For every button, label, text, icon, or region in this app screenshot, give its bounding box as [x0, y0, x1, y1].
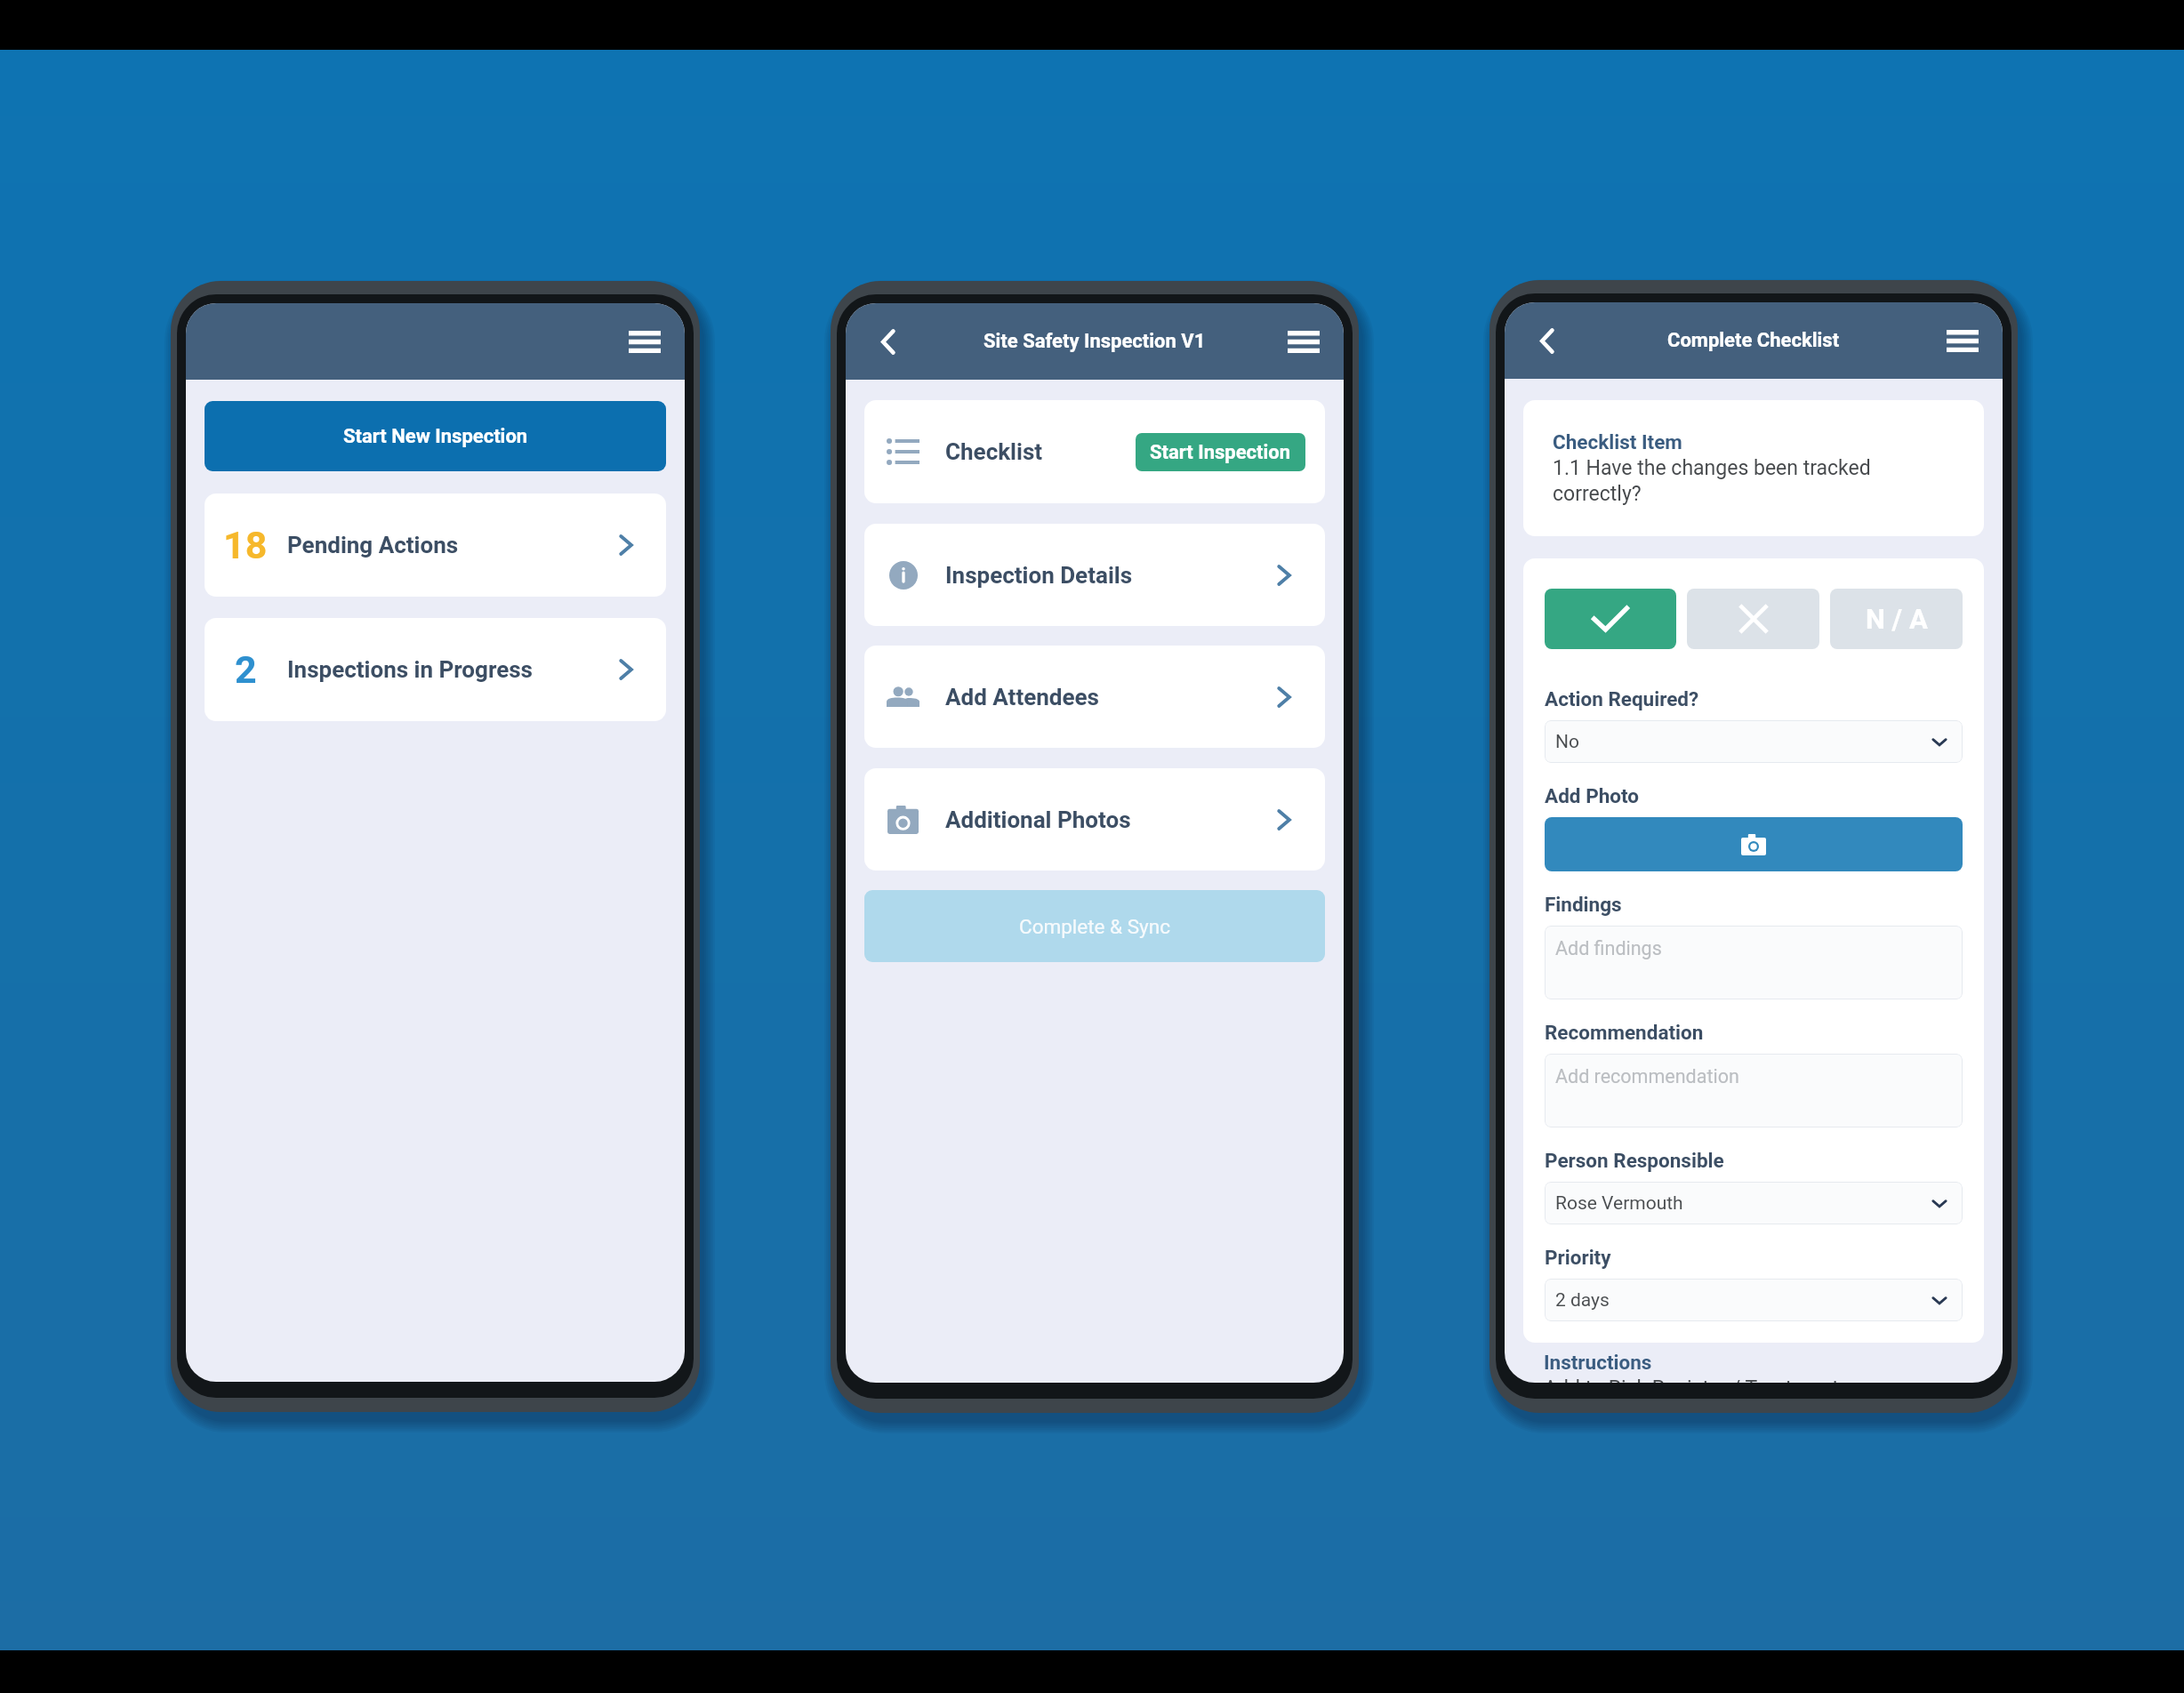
staticText: Action Required? [1545, 687, 1699, 710]
staticText: 18 [223, 523, 268, 567]
staticText: Start New Inspection [343, 425, 528, 448]
button[interactable]: Fail [1687, 589, 1819, 649]
button[interactable]: Back [865, 319, 910, 364]
staticText: Complete & Sync [1019, 915, 1170, 938]
staticText: 2 [235, 647, 257, 692]
staticText: Add Photo [1545, 784, 1639, 807]
button[interactable]: Menu [622, 319, 667, 364]
button[interactable]: Additional Photos [864, 768, 1325, 871]
staticText: Site Safety Inspection V1 [984, 330, 1206, 353]
staticText: Instructions [1544, 1351, 1652, 1374]
staticText: Checklist Item [1553, 430, 1682, 453]
button[interactable]: Start Inspection [1136, 433, 1305, 471]
button[interactable]: Add Attendees [864, 646, 1325, 748]
staticText: Additional Photos [945, 806, 1131, 833]
staticText: Findings [1545, 893, 1622, 916]
button[interactable]: Rose Vermouth [1545, 1182, 1963, 1224]
button[interactable]: 18 [205, 493, 666, 597]
staticText: Recommendation [1545, 1021, 1704, 1044]
staticText: Checklist [945, 438, 1043, 465]
staticText: Inspections in Progress [287, 656, 533, 683]
staticText: 1.1 Have the changes been tracked correc… [1553, 456, 1959, 506]
button[interactable]: Add findings [1545, 926, 1963, 999]
button[interactable]: Inspection Details [864, 524, 1325, 626]
button[interactable]: Menu [1281, 319, 1326, 364]
button[interactable]: Add recommendation [1545, 1054, 1963, 1127]
button[interactable]: No [1545, 720, 1963, 763]
button[interactable]: Pass [1545, 589, 1676, 649]
staticText: 2 days [1555, 1289, 1610, 1312]
button[interactable]: N / A [1830, 589, 1963, 649]
button[interactable]: Back [1524, 318, 1569, 363]
staticText: Complete Checklist [1667, 329, 1840, 352]
staticText: Add recommendation [1555, 1065, 1739, 1087]
button[interactable]: Add Photo [1545, 817, 1963, 871]
staticText: Priority [1545, 1246, 1611, 1269]
button[interactable]: Complete & Sync [864, 890, 1325, 962]
button[interactable]: 2 days [1545, 1279, 1963, 1321]
staticText: Inspection Details [945, 562, 1133, 589]
button[interactable]: Menu [1940, 318, 1985, 363]
staticText: Add to Risk Register / Treatment [1544, 1376, 1839, 1383]
staticText: Start Inspection [1150, 441, 1291, 464]
staticText: Add findings [1555, 937, 1662, 959]
button[interactable]: Start New Inspection [205, 401, 666, 471]
staticText: No [1555, 731, 1579, 753]
staticText: Person Responsible [1545, 1149, 1724, 1172]
staticText: Pending Actions [287, 532, 459, 558]
button[interactable]: 2 [205, 618, 666, 721]
staticText: Add Attendees [945, 684, 1099, 710]
button[interactable]: Checklist [864, 400, 1325, 503]
staticText: N / A [1866, 603, 1928, 635]
staticText: Rose Vermouth [1555, 1192, 1683, 1215]
